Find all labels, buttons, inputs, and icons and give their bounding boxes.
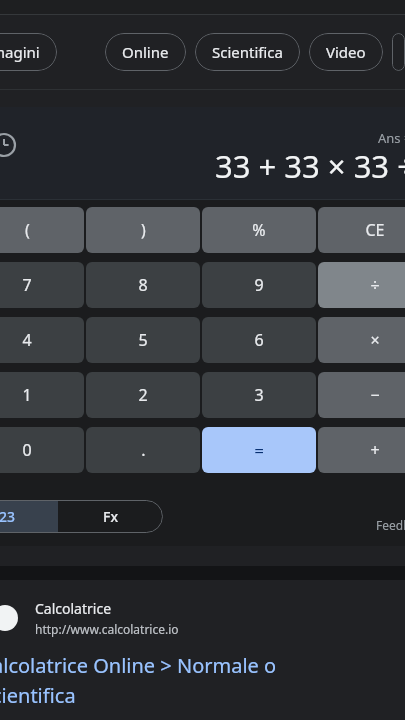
button[interactable]: Video bbox=[309, 33, 383, 71]
button[interactable]: A bbox=[392, 33, 405, 71]
button[interactable]: − bbox=[318, 372, 405, 418]
staticText: × bbox=[370, 329, 380, 351]
staticText: 123 bbox=[0, 507, 16, 526]
button[interactable]: 9 bbox=[202, 262, 316, 308]
staticText: ( bbox=[25, 219, 30, 241]
staticText: ÷ bbox=[370, 274, 380, 296]
button[interactable]: 7 bbox=[0, 262, 84, 308]
button[interactable]: ) bbox=[86, 207, 200, 253]
button[interactable]: History bbox=[0, 132, 17, 158]
staticText: − bbox=[370, 384, 380, 406]
button[interactable]: % bbox=[202, 207, 316, 253]
staticText: Calcolatrice bbox=[35, 599, 112, 618]
button[interactable]: × bbox=[318, 317, 405, 363]
staticText: Fx bbox=[103, 507, 118, 526]
staticText: http://www.calcolatrice.io bbox=[35, 621, 179, 637]
staticText: CE bbox=[365, 219, 385, 241]
button[interactable]: Fx bbox=[58, 500, 163, 533]
button[interactable]: 123 bbox=[0, 500, 58, 533]
staticText: 33 + 33 × 33 ÷ bbox=[215, 145, 405, 187]
button[interactable]: CE bbox=[318, 207, 405, 253]
staticText: % bbox=[252, 219, 266, 241]
button[interactable]: 2 bbox=[86, 372, 200, 418]
staticText: cientifica bbox=[0, 682, 76, 709]
staticText: Ans = 0 bbox=[378, 129, 405, 147]
staticText: + bbox=[370, 439, 380, 461]
button[interactable]: 1 bbox=[0, 372, 84, 418]
staticText: 3 bbox=[254, 384, 264, 406]
button[interactable]: mmagini bbox=[0, 33, 57, 71]
button[interactable]: ÷ bbox=[318, 262, 405, 308]
button[interactable]: Calcolatrice bbox=[0, 580, 405, 709]
button[interactable]: 8 bbox=[86, 262, 200, 308]
staticText: 5 bbox=[138, 329, 148, 351]
staticText: Online bbox=[122, 42, 169, 62]
button[interactable]: ( bbox=[0, 207, 84, 253]
button[interactable]: 6 bbox=[202, 317, 316, 363]
staticText: 4 bbox=[22, 329, 32, 351]
button[interactable]: Feedb bbox=[376, 517, 405, 533]
staticText: 9 bbox=[254, 274, 264, 296]
staticText: = bbox=[254, 439, 264, 462]
staticText: Video bbox=[326, 42, 366, 62]
button[interactable]: Scientifica bbox=[195, 33, 300, 71]
button[interactable]: 0 bbox=[0, 427, 84, 473]
staticText: mmagini bbox=[0, 42, 40, 62]
button[interactable]: + bbox=[318, 427, 405, 473]
staticText: alcolatrice Online > Normale o bbox=[0, 652, 277, 679]
button[interactable]: Online bbox=[105, 33, 186, 71]
staticText: 0 bbox=[22, 439, 32, 461]
staticText: 6 bbox=[254, 329, 264, 351]
staticText: 1 bbox=[22, 384, 32, 406]
staticText: . bbox=[141, 439, 146, 461]
button[interactable]: 4 bbox=[0, 317, 84, 363]
button[interactable]: 5 bbox=[86, 317, 200, 363]
staticText: 7 bbox=[22, 274, 32, 296]
staticText: Scientifica bbox=[212, 42, 283, 62]
staticText: 2 bbox=[138, 384, 148, 406]
staticText: 8 bbox=[138, 274, 148, 296]
button[interactable]: 3 bbox=[202, 372, 316, 418]
button[interactable]: . bbox=[86, 427, 200, 473]
button[interactable]: = bbox=[202, 427, 316, 473]
staticText: ) bbox=[141, 219, 146, 241]
